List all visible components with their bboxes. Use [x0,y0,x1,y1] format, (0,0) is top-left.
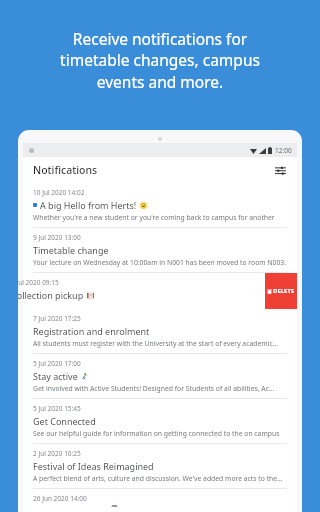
staticText: Your lecture on Wednesday at 10:00am in … [33,258,287,267]
staticText: Receive notifications for timetable chan… [60,28,260,93]
staticText: Get involved with Active Students! Desig… [33,384,275,393]
button[interactable]: 2 Jul 2020 10:25 [23,444,297,489]
button[interactable]: DELETE [265,273,297,309]
staticText: See our helpful guide for information on… [33,429,287,438]
button[interactable]: 5 Jul 2020 17:00 [23,354,297,399]
staticText: Whether you're a new student or you're c… [33,213,287,222]
staticText: 5 Jul 2020 15:45 [33,404,81,413]
staticText: Notifications [33,163,98,177]
staticText: 8 Jul 2020 09:15 [18,278,59,287]
staticText: DELETE [273,287,295,295]
staticText: Collection pickup [18,289,84,301]
button[interactable]: Filter notifications [271,161,289,179]
staticText: All students must register with the Univ… [33,339,279,348]
staticText: 7 Jul 2020 17:25 [33,314,81,323]
staticText: 2 Jul 2020 10:25 [33,449,81,458]
staticText: A perfect blend of arts, culture and dis… [33,474,283,483]
button[interactable]: 7 Jul 2020 17:25 [23,309,297,354]
staticText: 10 Jul 2020 14:02 [33,188,85,197]
staticText: 9 Jul 2020 13:00 [33,233,81,242]
staticText: Timetable change [33,244,109,256]
button[interactable]: 26 Jun 2020 14:00 [23,489,297,512]
staticText: 5 Jul 2020 17:00 [33,359,81,368]
button[interactable]: 9 Jul 2020 13:00 [23,228,297,273]
button[interactable]: 8 Jul 2020 09:15 [23,273,297,309]
staticText: Get Connected [33,415,96,427]
staticText: A big Hello from Herts! [40,199,137,211]
button[interactable]: 5 Jul 2020 15:45 [23,399,297,444]
staticText: Festival of Ideas Reimagined [33,460,154,472]
staticText: 26 Jun 2020 14:00 [33,494,87,503]
staticText: Stay active [33,370,78,382]
button[interactable]: 10 Jul 2020 14:02 [23,183,297,228]
staticText: 12:00 [275,146,292,155]
staticText: Registration and enrolment [33,325,150,337]
